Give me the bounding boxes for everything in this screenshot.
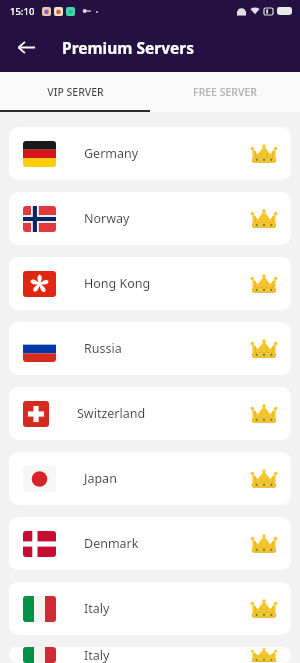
button[interactable]: FREE SERVER — [150, 72, 300, 112]
staticText: 15:10 — [10, 5, 35, 18]
button[interactable]: Russia — [9, 322, 291, 375]
staticText: Germany — [84, 145, 139, 162]
staticText: VIP SERVER — [47, 85, 104, 99]
staticText: Denmark — [84, 535, 139, 552]
button[interactable]: Back — [8, 29, 44, 65]
button[interactable]: Japan — [9, 452, 291, 505]
staticText: Italy — [84, 647, 110, 663]
staticText: Hong Kong — [84, 275, 151, 292]
staticText: Japan — [84, 470, 117, 487]
button[interactable]: Switzerland — [9, 387, 291, 440]
staticText: Switzerland — [77, 405, 146, 422]
button[interactable]: Denmark — [9, 517, 291, 570]
button[interactable]: VIP SERVER — [0, 72, 150, 112]
button[interactable]: Germany — [9, 127, 291, 180]
staticText: Norway — [84, 210, 130, 227]
button[interactable]: Italy — [9, 647, 291, 663]
staticText: Russia — [84, 340, 122, 357]
button[interactable]: Italy — [9, 582, 291, 635]
staticText: Premium Servers — [62, 37, 194, 58]
staticText: FREE SERVER — [193, 85, 257, 99]
staticText: Italy — [84, 600, 110, 617]
button[interactable]: Hong Kong — [9, 257, 291, 310]
button[interactable]: Norway — [9, 192, 291, 245]
